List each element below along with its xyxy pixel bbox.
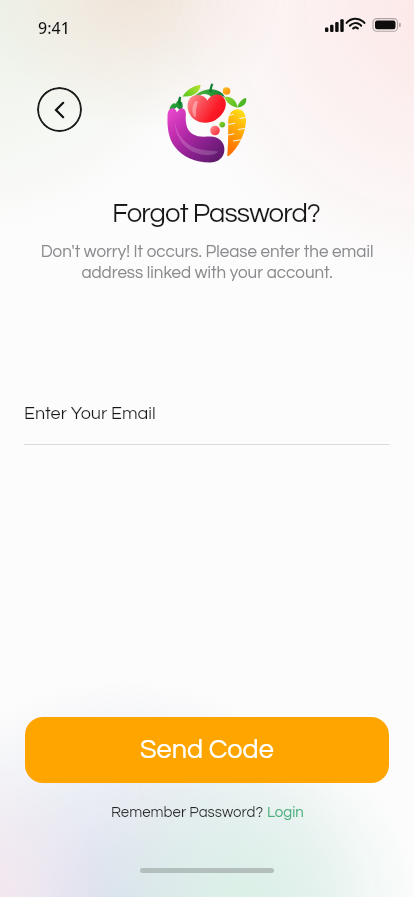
staticText: Don't worry! It occurs. Please enter the… [0, 243, 414, 282]
staticText: 9:41 [38, 17, 70, 39]
staticText: Login [267, 805, 304, 820]
staticText: Send Code [140, 736, 274, 764]
staticText: Remember Password? [111, 805, 267, 820]
button[interactable]: Back [37, 87, 82, 132]
button[interactable]: Send Code [25, 717, 389, 783]
staticText: Enter Your Email [24, 404, 156, 423]
button[interactable]: Login [267, 805, 304, 820]
staticText: Forgot Password? [112, 199, 320, 227]
